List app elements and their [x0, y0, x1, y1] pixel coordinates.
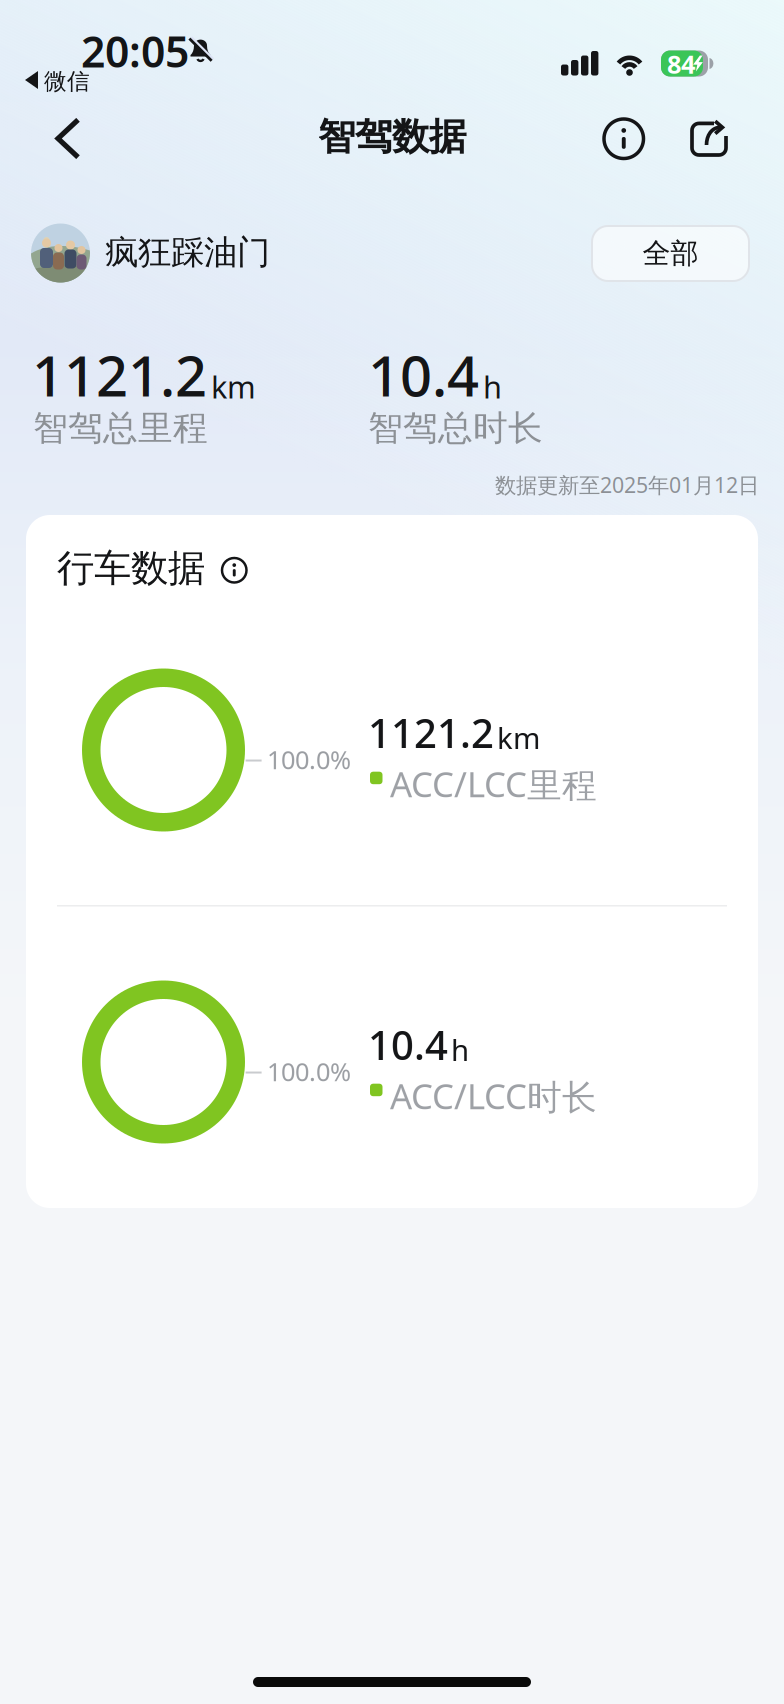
staticText: km — [497, 718, 540, 757]
staticText: ACC/LCC时长 — [390, 1073, 597, 1119]
staticText: 疯狂踩油门 — [105, 232, 270, 273]
staticText: 微信 — [44, 67, 90, 95]
staticText: ACC/LCC里程 — [390, 761, 597, 807]
staticText: 100.0% — [267, 1054, 351, 1088]
staticText: 智驾总里程 — [33, 407, 208, 449]
staticText: 10.4 — [368, 1018, 448, 1071]
button[interactable]: 全部 — [592, 226, 749, 281]
button[interactable]: Share — [690, 119, 728, 158]
staticText: 100.0% — [267, 742, 351, 776]
staticText: 10.4 — [368, 337, 479, 412]
staticText: 行车数据 — [57, 545, 205, 591]
button[interactable]: Back — [54, 117, 83, 160]
staticText: h — [451, 1030, 469, 1069]
staticText: 智驾总时长 — [368, 407, 543, 449]
staticText: 1121.2 — [32, 337, 207, 412]
staticText: 智驾数据 — [318, 114, 466, 160]
staticText: 全部 — [642, 236, 698, 271]
staticText: 数据更新至2025年01月12日 — [495, 470, 759, 499]
staticText: 20:05 — [81, 22, 189, 79]
button[interactable]: Info — [604, 119, 643, 158]
button[interactable]: 行车数据说明 — [222, 558, 246, 582]
staticText: h — [483, 366, 502, 407]
staticText: 84 — [667, 47, 695, 81]
staticText: km — [211, 366, 256, 407]
staticText: 1121.2 — [368, 706, 494, 759]
